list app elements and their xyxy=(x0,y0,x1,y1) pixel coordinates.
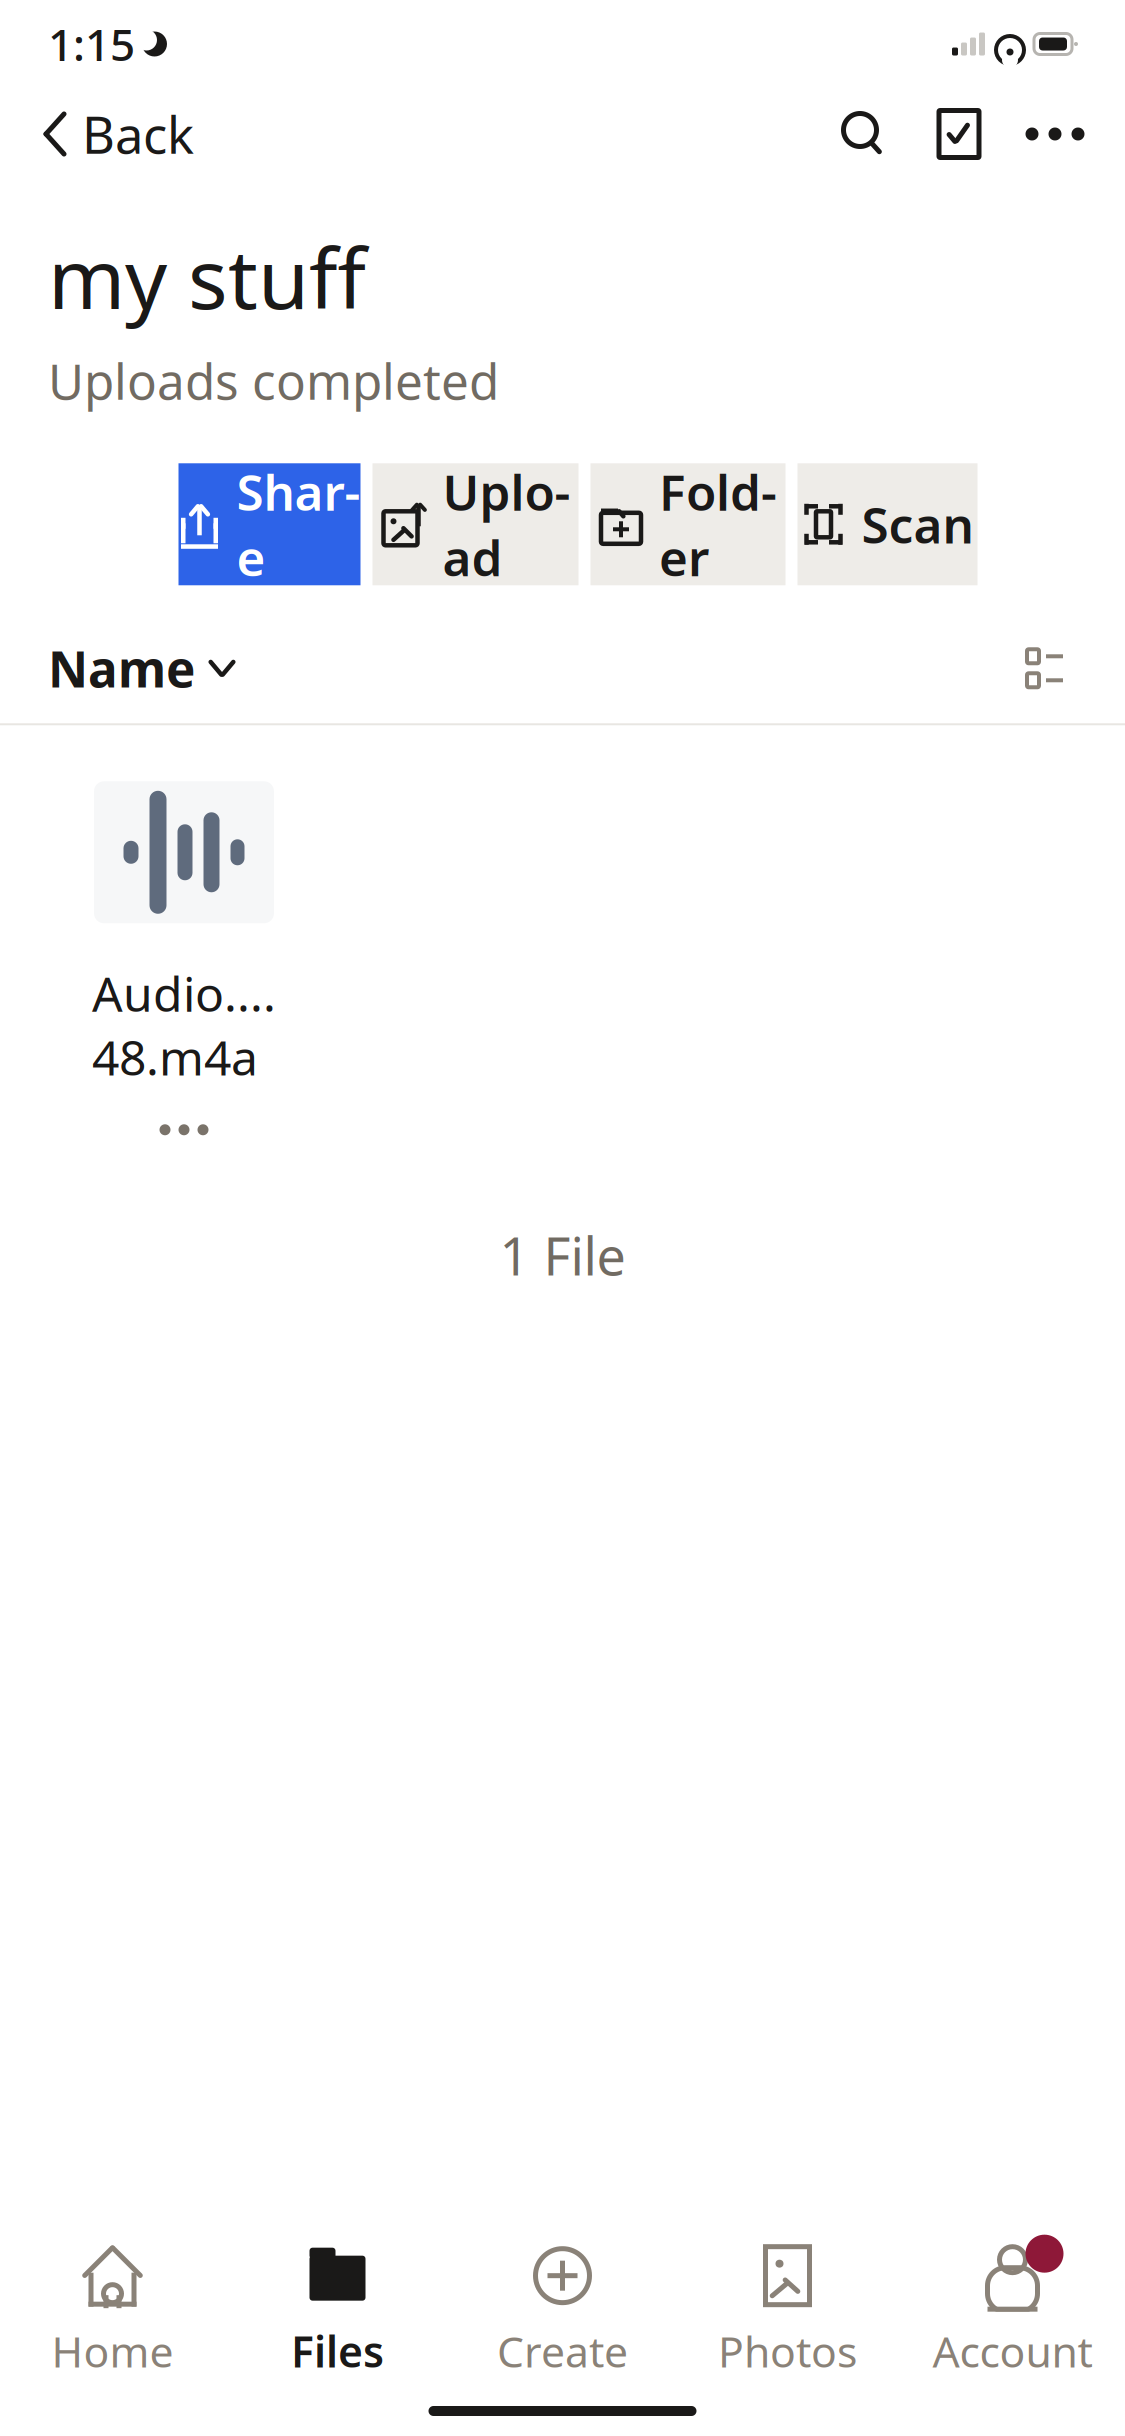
staticText: my stuff xyxy=(48,222,366,332)
button[interactable]: File options xyxy=(139,1103,229,1157)
button[interactable]: Upload xyxy=(372,463,578,585)
staticText: Files xyxy=(291,2323,384,2379)
button[interactable]: Home xyxy=(0,2238,225,2384)
staticText: Photos xyxy=(718,2323,857,2379)
button[interactable]: Scan xyxy=(797,463,977,585)
staticText: Account xyxy=(932,2323,1092,2379)
staticText: 1:15 xyxy=(48,15,135,73)
button[interactable]: Change view xyxy=(1013,636,1077,700)
staticText: Name xyxy=(48,635,195,701)
staticText: Folder xyxy=(659,459,777,590)
staticText: 1 File xyxy=(499,1221,625,1290)
staticText: Share xyxy=(236,459,360,590)
staticText: Audio....48.m4a xyxy=(92,961,276,1089)
button[interactable]: Folder xyxy=(590,463,785,585)
button[interactable]: Search xyxy=(827,96,899,172)
button[interactable]: Account xyxy=(900,2238,1125,2384)
staticText: Back xyxy=(82,100,194,168)
button[interactable]: Select xyxy=(923,96,995,172)
button[interactable]: Audio....48.m4a xyxy=(44,781,324,1089)
button[interactable]: More options xyxy=(1019,96,1091,172)
button[interactable]: Share xyxy=(178,463,360,585)
button[interactable]: Create xyxy=(450,2238,675,2384)
button[interactable]: Back xyxy=(34,92,202,176)
button[interactable]: Files xyxy=(225,2238,450,2384)
staticText: Uploads completed xyxy=(48,348,499,413)
staticText: Home xyxy=(51,2323,173,2379)
button[interactable]: Photos xyxy=(675,2238,900,2384)
staticText: Scan xyxy=(861,491,973,557)
staticText: Upload xyxy=(442,459,570,590)
button[interactable]: Name xyxy=(48,617,237,719)
staticText: Create xyxy=(497,2323,628,2379)
